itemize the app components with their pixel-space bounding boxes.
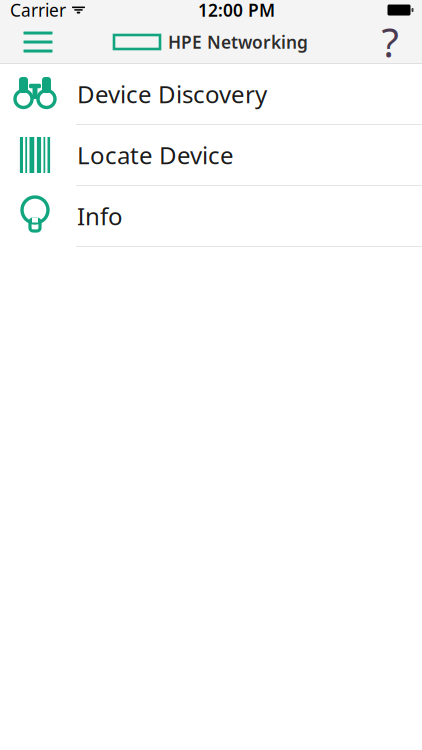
- button[interactable]: Menu: [0, 20, 58, 64]
- staticText: Info: [77, 200, 123, 232]
- staticText: Carrier: [10, 0, 66, 21]
- staticText: HPE Networking: [168, 30, 308, 53]
- button[interactable]: Device Discovery: [0, 64, 422, 125]
- button[interactable]: Info: [0, 186, 422, 247]
- staticText: Locate Device: [77, 139, 234, 171]
- staticText: ?: [381, 15, 398, 68]
- button[interactable]: Locate Device: [0, 125, 422, 186]
- button[interactable]: Help: [372, 20, 422, 64]
- staticText: Device Discovery: [77, 78, 267, 110]
- staticText: 12:00 PM: [198, 0, 275, 21]
